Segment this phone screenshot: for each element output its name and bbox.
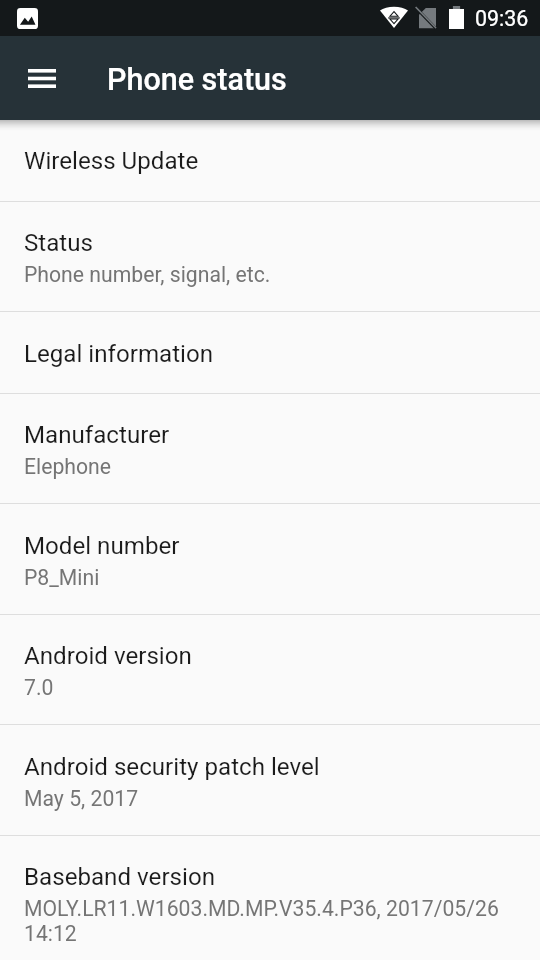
staticText: Elephone: [24, 454, 112, 479]
staticText: P8_Mini: [24, 565, 100, 590]
staticText: Baseband version: [24, 863, 216, 891]
button[interactable]: Wireless Update: [0, 120, 540, 202]
staticText: Legal information: [24, 340, 214, 368]
staticText: Status: [24, 229, 94, 257]
button[interactable]: Status: [0, 202, 540, 312]
staticText: Wireless Update: [24, 147, 199, 175]
button[interactable]: Model number: [0, 504, 540, 615]
button[interactable]: Open navigation menu: [18, 54, 66, 102]
staticText: MOLY.LR11.W1603.MD.MP.V35.4.P36, 2017/05…: [24, 896, 518, 946]
staticText: May 5, 2017: [24, 786, 139, 811]
staticText: 7.0: [24, 675, 54, 700]
button[interactable]: Manufacturer: [0, 394, 540, 504]
staticText: Android security patch level: [24, 753, 320, 781]
staticText: Android version: [24, 642, 192, 670]
staticText: Phone number, signal, etc.: [24, 262, 271, 287]
staticText: Model number: [24, 532, 180, 560]
staticText: Manufacturer: [24, 421, 170, 449]
button[interactable]: Legal information: [0, 312, 540, 394]
button[interactable]: Android security patch level: [0, 725, 540, 836]
button[interactable]: Baseband version: [0, 836, 540, 960]
button[interactable]: Android version: [0, 615, 540, 725]
staticText: Phone status: [107, 62, 287, 98]
staticText: 09:36: [475, 6, 529, 31]
